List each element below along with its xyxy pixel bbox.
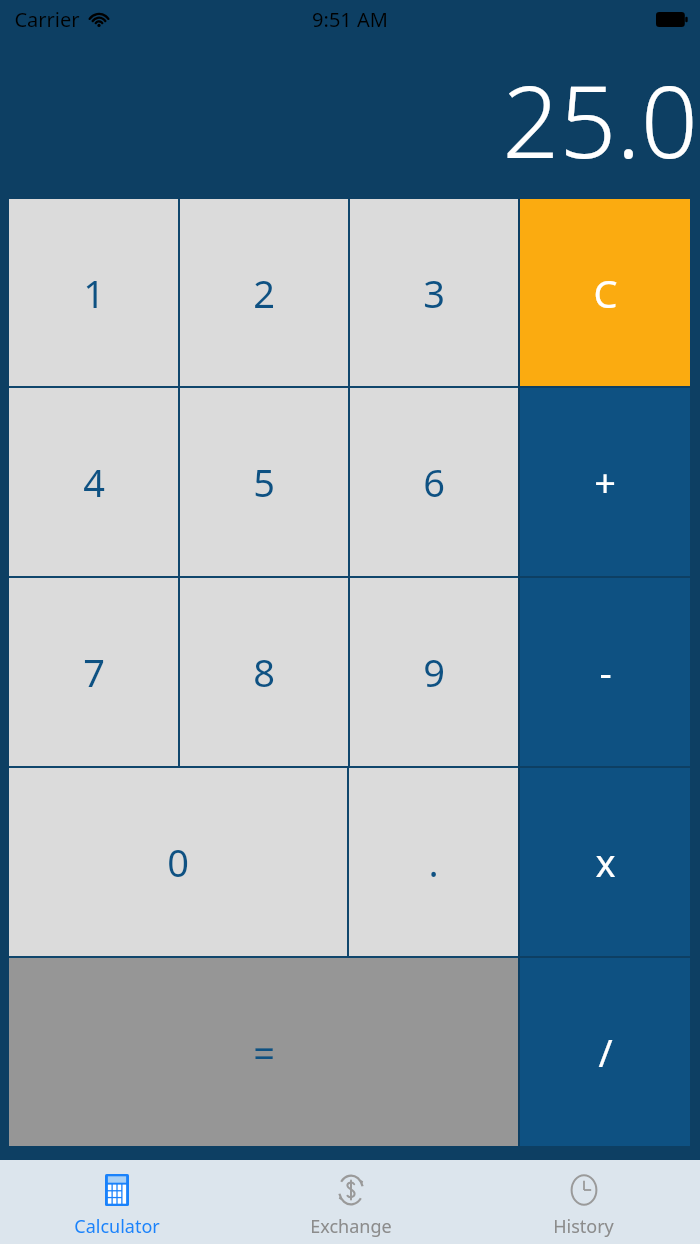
staticText: =	[253, 1026, 275, 1078]
staticText: 7	[83, 646, 105, 698]
staticText: 9	[423, 646, 445, 698]
button[interactable]: 3	[350, 199, 518, 386]
button[interactable]: Exchange	[234, 1160, 467, 1244]
button[interactable]: 8	[180, 578, 348, 766]
staticText: 9:51 AM	[312, 6, 388, 33]
staticText: +	[594, 456, 616, 508]
button[interactable]: =	[9, 958, 518, 1146]
button[interactable]: 2	[180, 199, 348, 386]
button[interactable]: C	[520, 199, 690, 386]
staticText: 0	[167, 836, 189, 888]
staticText: 8	[253, 646, 275, 698]
staticText: History	[553, 1214, 614, 1239]
staticText: Calculator	[74, 1214, 160, 1239]
staticText: /	[598, 1026, 613, 1078]
button[interactable]: .	[349, 768, 518, 956]
staticText: 3	[423, 267, 445, 319]
button[interactable]: 6	[350, 388, 518, 576]
staticText: 6	[423, 456, 445, 508]
other: Calculator	[97, 1170, 137, 1210]
button[interactable]: 5	[180, 388, 348, 576]
staticText: 2	[253, 267, 275, 319]
staticText: Exchange	[310, 1214, 392, 1239]
staticText: 4	[83, 456, 105, 508]
other: History	[564, 1170, 604, 1210]
button[interactable]: Calculator	[0, 1160, 234, 1244]
button[interactable]: 0	[9, 768, 347, 956]
other: Exchange	[331, 1170, 371, 1210]
button[interactable]: x	[520, 768, 690, 956]
staticText: 25.0	[502, 51, 698, 187]
button[interactable]: 4	[9, 388, 178, 576]
staticText: 5	[253, 456, 275, 508]
staticText: x	[595, 836, 616, 888]
staticText: -	[599, 646, 612, 698]
button[interactable]: 1	[9, 199, 178, 386]
button[interactable]: 9	[350, 578, 518, 766]
staticText: Carrier	[14, 6, 80, 33]
button[interactable]: /	[520, 958, 690, 1146]
button[interactable]: -	[520, 578, 690, 766]
staticText: .	[428, 836, 439, 888]
staticText: 1	[83, 267, 105, 319]
staticText: C	[593, 267, 618, 319]
button[interactable]: History	[467, 1160, 700, 1244]
button[interactable]: +	[520, 388, 690, 576]
button[interactable]: 7	[9, 578, 178, 766]
